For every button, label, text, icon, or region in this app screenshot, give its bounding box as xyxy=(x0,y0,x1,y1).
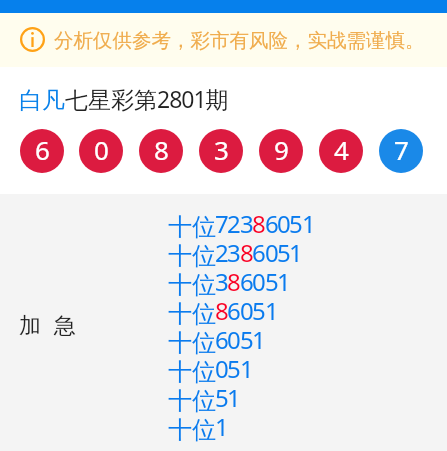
button[interactable]: 十位 xyxy=(0,241,447,271)
staticText: 6 xyxy=(265,207,279,237)
staticText: 0 xyxy=(227,323,241,353)
staticText: 4 xyxy=(334,132,349,167)
staticText: 5 xyxy=(227,352,241,382)
staticText: 3 xyxy=(227,236,241,266)
button[interactable]: 6 xyxy=(20,129,64,173)
staticText: 5 xyxy=(252,294,266,324)
staticText: 十位 xyxy=(168,415,216,445)
staticText: 0 xyxy=(277,207,291,237)
button[interactable]: 十位 xyxy=(0,299,447,329)
staticText: 1 xyxy=(252,323,266,353)
button[interactable]: 0 xyxy=(79,129,123,173)
staticText: 0 xyxy=(252,265,266,295)
staticText: 7 xyxy=(394,132,409,167)
staticText: 3 xyxy=(240,207,254,237)
staticText: 0 xyxy=(94,132,109,167)
staticText: 3 xyxy=(215,265,229,295)
button[interactable]: 4 xyxy=(319,129,363,173)
staticText: 十位 xyxy=(168,241,216,271)
staticText: 十位 xyxy=(168,357,216,387)
staticText: 5 xyxy=(289,207,303,237)
staticText: 十位 xyxy=(168,386,216,416)
staticText: 5 xyxy=(265,265,279,295)
staticText: 1 xyxy=(215,410,229,440)
staticText: 6 xyxy=(252,236,266,266)
staticText: 6 xyxy=(35,132,50,167)
staticText: 1 xyxy=(302,207,316,237)
staticText: 2 xyxy=(227,207,241,237)
button[interactable]: 白凡七星彩第2801期 xyxy=(0,67,447,128)
staticText: 5 xyxy=(240,323,254,353)
staticText: 1 xyxy=(227,381,241,411)
staticText: 1 xyxy=(277,265,291,295)
staticText: 分析仅供参考，彩市有风险，实战需谨慎。 xyxy=(54,28,425,53)
staticText: 0 xyxy=(240,294,254,324)
staticText: 0 xyxy=(215,352,229,382)
staticText: 十位 xyxy=(168,270,216,300)
staticText: 6 xyxy=(227,294,241,324)
staticText: 十位 xyxy=(168,328,216,358)
button[interactable]: 9 xyxy=(259,129,303,173)
staticText: 1 xyxy=(265,294,279,324)
staticText: 5 xyxy=(277,236,291,266)
button[interactable]: 十位 xyxy=(0,328,447,358)
staticText: 5 xyxy=(215,381,229,411)
staticText: 8 xyxy=(252,207,266,237)
staticText: 7 xyxy=(215,207,229,237)
staticText: 2 xyxy=(215,236,229,266)
staticText: 十位 xyxy=(168,212,216,242)
staticText: 8 xyxy=(215,294,229,324)
staticText: 加 急 xyxy=(19,309,80,339)
button[interactable]: 十位 xyxy=(0,212,447,242)
button[interactable]: Information xyxy=(0,13,447,67)
button[interactable]: 十位 xyxy=(0,415,447,445)
staticText: 9 xyxy=(274,132,289,167)
staticText: 6 xyxy=(215,323,229,353)
staticText: 6 xyxy=(240,265,254,295)
staticText: 8 xyxy=(154,132,169,167)
staticText: 8 xyxy=(227,265,241,295)
staticText: 十位 xyxy=(168,299,216,329)
button[interactable]: 十位 xyxy=(0,386,447,416)
button[interactable]: 3 xyxy=(199,129,243,173)
staticText: 3 xyxy=(214,132,229,167)
staticText: 1 xyxy=(289,236,303,266)
staticText: 1 xyxy=(240,352,254,382)
staticText: 8 xyxy=(240,236,254,266)
staticText: 0 xyxy=(265,236,279,266)
button[interactable]: 8 xyxy=(139,129,183,173)
button[interactable]: 十位 xyxy=(0,270,447,300)
staticText: 白凡七星彩第2801期 xyxy=(19,83,229,114)
button[interactable]: 7 xyxy=(379,129,423,173)
other: Information xyxy=(20,27,45,52)
button[interactable]: 十位 xyxy=(0,357,447,387)
